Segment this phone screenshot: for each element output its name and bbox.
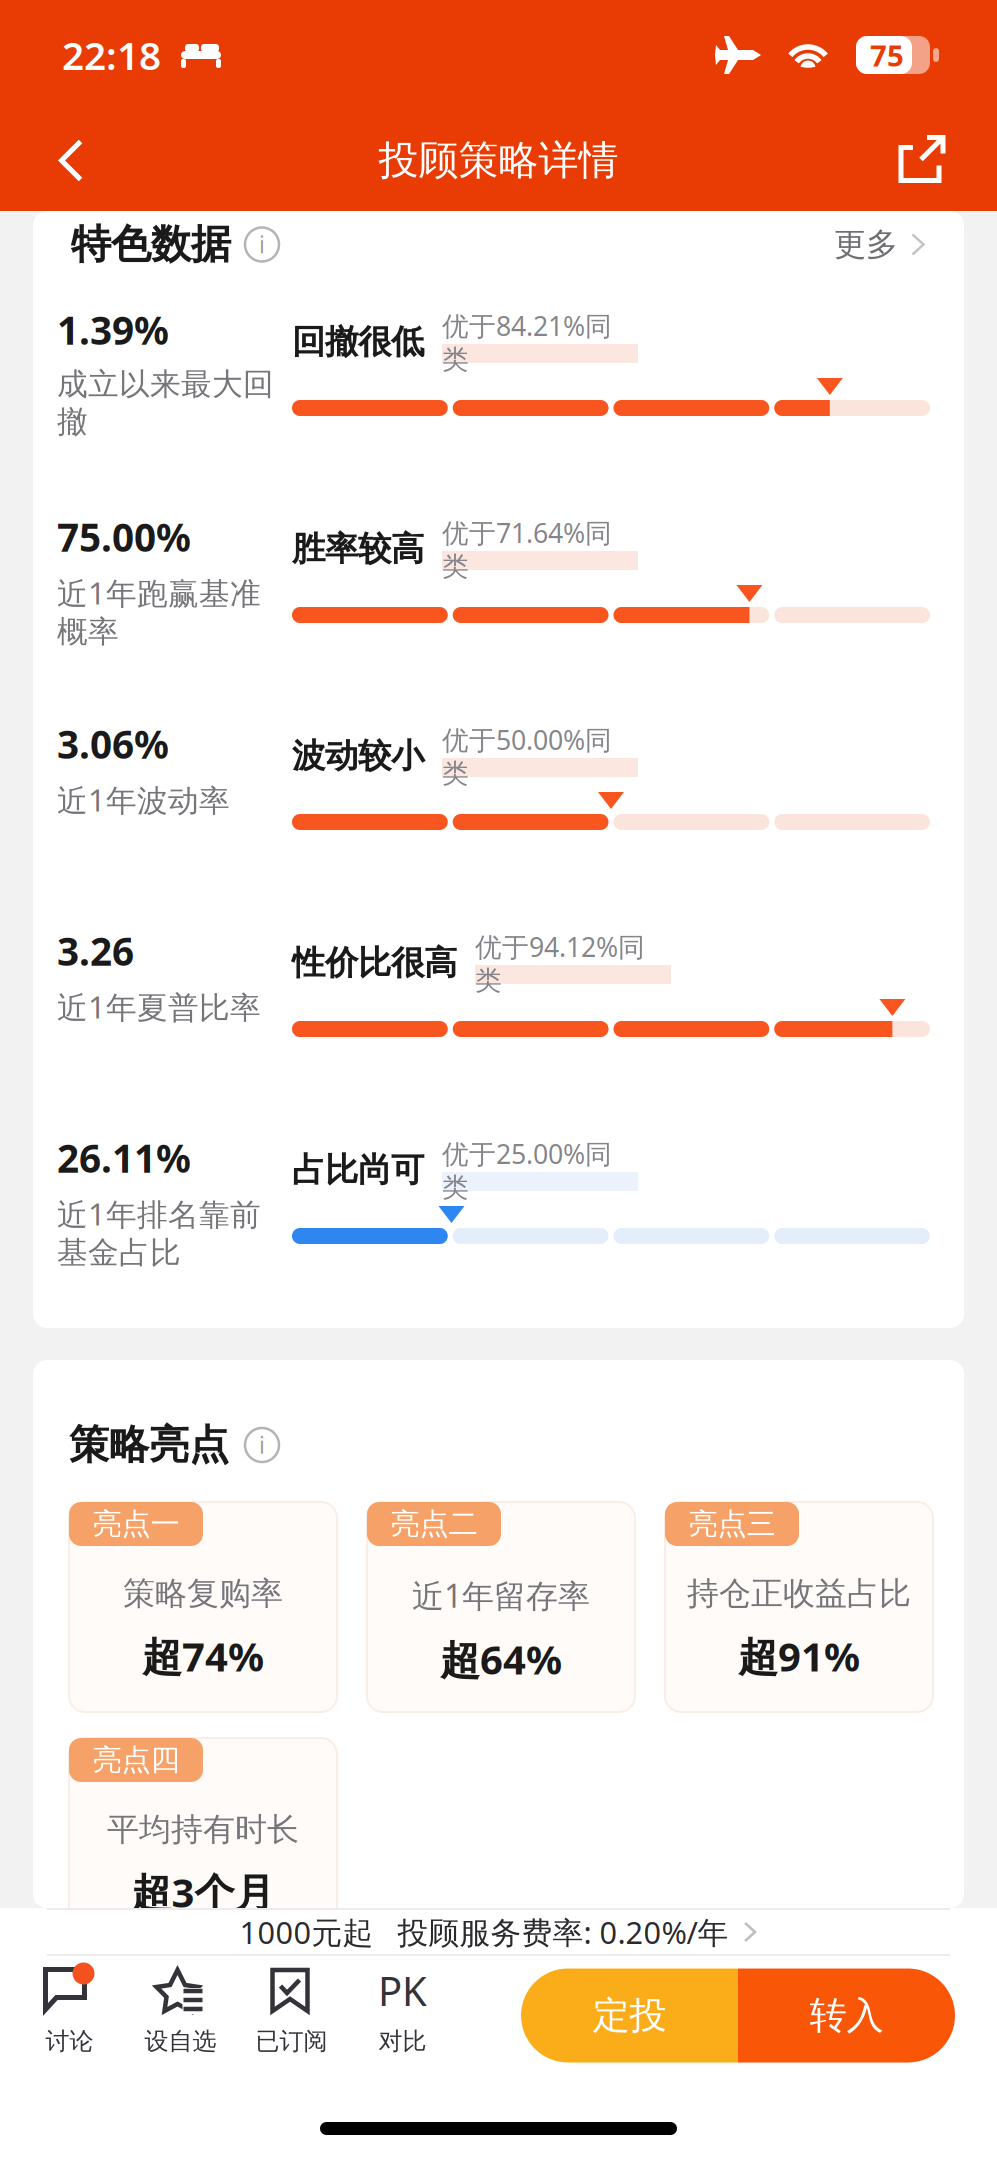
staticText: i bbox=[259, 229, 265, 259]
staticText: 1.39% bbox=[57, 304, 169, 355]
staticText: 26.11% bbox=[57, 1132, 191, 1183]
staticText: 平均持有时长 bbox=[107, 1810, 299, 1849]
staticText: 优于94.12%同类 bbox=[475, 929, 645, 997]
staticText: 撤 bbox=[57, 403, 88, 441]
button[interactable]: 已订阅 bbox=[236, 1966, 347, 2064]
staticText: 投顾服务费率: 0.20%/年 bbox=[398, 1912, 729, 1952]
staticText: 1000元起 bbox=[240, 1912, 374, 1952]
staticText: 优于25.00%同类 bbox=[442, 1136, 612, 1204]
staticText: 超64% bbox=[440, 1632, 562, 1686]
button[interactable]: 讨论 bbox=[14, 1966, 125, 2064]
staticText: PK bbox=[378, 1964, 427, 2017]
staticText: 近1年排名靠前 bbox=[57, 1193, 261, 1234]
staticText: 近1年留存率 bbox=[412, 1574, 590, 1616]
staticText: 75.00% bbox=[57, 511, 191, 562]
button[interactable]: PK bbox=[347, 1966, 458, 2064]
button[interactable]: 更多 bbox=[834, 216, 926, 272]
button[interactable]: 返回 bbox=[34, 122, 108, 198]
button[interactable]: 设自选 bbox=[125, 1966, 236, 2064]
staticText: 占比尚可 bbox=[292, 1149, 424, 1190]
staticText: 22:18 bbox=[62, 29, 161, 81]
staticText: 概率 bbox=[57, 613, 119, 651]
staticText: 超3个月 bbox=[131, 1865, 274, 1918]
staticText: 75 bbox=[870, 35, 904, 74]
staticText: 策略复购率 bbox=[123, 1574, 283, 1613]
staticText: 策略亮点 bbox=[69, 1420, 229, 1469]
staticText: 已订阅 bbox=[255, 2026, 327, 2056]
button[interactable]: 转入 bbox=[738, 1968, 955, 2062]
staticText: 更多 bbox=[834, 225, 898, 264]
staticText: 设自选 bbox=[144, 2026, 216, 2056]
staticText: 近1年跑赢基准 bbox=[57, 572, 261, 613]
staticText: 亮点四 bbox=[92, 1742, 179, 1778]
staticText: 特色数据 bbox=[71, 220, 231, 269]
button[interactable]: 分享 bbox=[885, 122, 959, 198]
staticText: 持仓正收益占比 bbox=[687, 1574, 911, 1613]
staticText: 成立以来最大回 bbox=[57, 365, 274, 403]
staticText: 胜率较高 bbox=[292, 528, 424, 569]
staticText: 优于71.64%同类 bbox=[442, 515, 612, 583]
staticText: 亮点二 bbox=[390, 1506, 477, 1542]
staticText: 3.26 bbox=[57, 925, 134, 976]
staticText: 讨论 bbox=[45, 2026, 93, 2056]
button[interactable]: 定投 bbox=[521, 1968, 738, 2062]
staticText: 波动较小 bbox=[292, 735, 424, 776]
staticText: 近1年夏普比率 bbox=[57, 986, 261, 1027]
staticText: 性价比很高 bbox=[292, 942, 457, 983]
button[interactable]: 1000元起 bbox=[0, 1910, 997, 1954]
staticText: 优于84.21%同类 bbox=[442, 308, 612, 376]
staticText: i bbox=[259, 1430, 265, 1460]
staticText: 转入 bbox=[809, 1993, 883, 2038]
staticText: 优于50.00%同类 bbox=[442, 722, 612, 790]
staticText: 近1年波动率 bbox=[57, 779, 230, 820]
staticText: 定投 bbox=[592, 1993, 666, 2038]
staticText: 回撤很低 bbox=[292, 321, 424, 362]
staticText: 基金占比 bbox=[57, 1234, 181, 1272]
staticText: 亮点一 bbox=[92, 1506, 179, 1542]
staticText: 亮点三 bbox=[688, 1506, 775, 1542]
staticText: 对比 bbox=[378, 2026, 426, 2056]
staticText: 超91% bbox=[738, 1629, 860, 1682]
staticText: 投顾策略详情 bbox=[378, 136, 618, 185]
staticText: 3.06% bbox=[57, 718, 169, 769]
staticText: 超74% bbox=[142, 1629, 264, 1682]
